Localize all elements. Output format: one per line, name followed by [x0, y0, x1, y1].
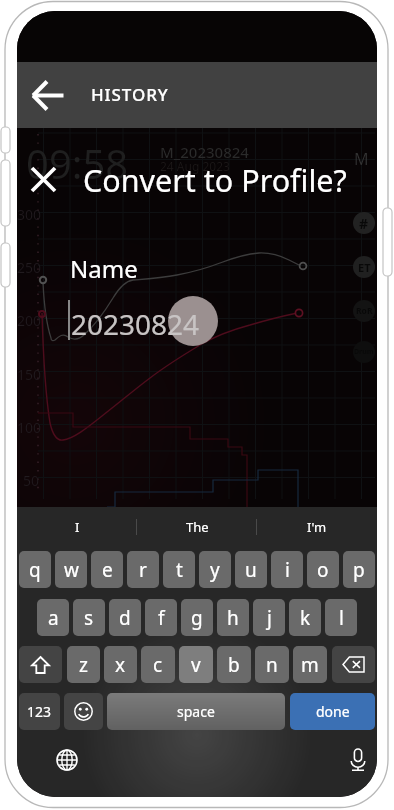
staticText: space — [177, 702, 215, 721]
button[interactable]: q — [19, 551, 51, 588]
button[interactable]: u — [235, 551, 267, 588]
staticText: p — [353, 557, 365, 583]
staticText: 20230824 — [71, 305, 200, 343]
staticText: s — [84, 605, 94, 631]
button[interactable]: I'm — [257, 507, 377, 547]
button[interactable]: i — [271, 551, 303, 588]
button[interactable]: z — [67, 646, 100, 683]
button[interactable]: done — [290, 693, 375, 730]
staticText: The — [186, 518, 209, 536]
button[interactable]: r — [127, 551, 159, 588]
staticText: l — [339, 605, 344, 631]
staticText: e — [102, 557, 113, 583]
button[interactable]: Shift — [19, 646, 62, 683]
staticText: 50 — [23, 471, 40, 490]
button[interactable]: I — [17, 507, 137, 547]
staticText: Name — [70, 252, 138, 285]
button[interactable]: ET — [353, 256, 375, 278]
staticText: 100 — [17, 418, 42, 437]
button[interactable]: g — [181, 599, 213, 636]
button[interactable]: v — [179, 646, 213, 683]
button[interactable]: l — [325, 599, 357, 636]
button[interactable]: Back — [17, 62, 79, 128]
staticText: 123 — [27, 702, 52, 721]
staticText: 300 — [17, 205, 42, 224]
staticText: u — [245, 557, 257, 583]
button[interactable]: Close — [20, 156, 66, 202]
button[interactable]: t — [163, 551, 195, 588]
button[interactable]: d — [109, 599, 141, 636]
staticText: 09:58 — [26, 136, 129, 190]
button[interactable]: b — [217, 646, 251, 683]
staticText: w — [64, 557, 79, 583]
staticText: 24 Aug 2023 — [160, 158, 230, 174]
staticText: t — [176, 557, 183, 583]
staticText: done — [316, 702, 350, 721]
staticText: a — [48, 605, 59, 631]
button[interactable]: k — [289, 599, 321, 636]
staticText: M — [354, 148, 369, 170]
button[interactable]: e — [91, 551, 123, 588]
staticText: g — [191, 605, 203, 631]
staticText: q — [29, 557, 41, 583]
staticText: j — [267, 605, 272, 631]
staticText: r — [139, 557, 147, 583]
staticText: b — [228, 652, 240, 678]
button[interactable]: p — [343, 551, 375, 588]
staticText: M_20230824 — [160, 142, 249, 162]
staticText: c — [153, 652, 163, 678]
staticText: 250 — [17, 258, 42, 277]
staticText: 150 — [17, 365, 42, 384]
staticText: m — [301, 652, 319, 678]
staticText: i — [285, 557, 290, 583]
button[interactable]: a — [37, 599, 69, 636]
staticText: z — [79, 652, 88, 678]
staticText: y — [210, 557, 220, 583]
staticText: 200 — [17, 311, 42, 330]
button[interactable]: Drum — [353, 341, 375, 363]
staticText: x — [115, 652, 126, 678]
button[interactable]: y — [199, 551, 231, 588]
button[interactable]: j — [253, 599, 285, 636]
button[interactable]: Backspace — [332, 646, 375, 683]
button[interactable]: w — [55, 551, 87, 588]
staticText: o — [317, 557, 329, 583]
button[interactable]: s — [73, 599, 105, 636]
button[interactable]: Emoji — [64, 693, 103, 730]
staticText: I — [75, 518, 80, 536]
button[interactable]: RoR — [353, 300, 375, 322]
button[interactable]: m — [293, 646, 327, 683]
button[interactable]: h — [217, 599, 249, 636]
button[interactable]: 123 — [19, 693, 60, 730]
staticText: HISTORY — [91, 83, 169, 106]
staticText: n — [266, 652, 278, 678]
button[interactable]: c — [141, 646, 175, 683]
staticText: Convert to Profile? — [83, 159, 347, 201]
button[interactable]: # — [353, 212, 375, 234]
button[interactable]: The — [137, 507, 257, 547]
staticText: k — [300, 605, 311, 631]
staticText: I'm — [307, 518, 327, 536]
button[interactable]: Voice input — [336, 738, 377, 782]
staticText: d — [119, 605, 131, 631]
staticText: f — [158, 605, 165, 631]
button[interactable]: o — [307, 551, 339, 588]
staticText: ET — [358, 260, 371, 275]
staticText: h — [227, 605, 239, 631]
button[interactable]: space — [107, 693, 285, 730]
button[interactable]: x — [104, 646, 137, 683]
button[interactable]: Change language — [45, 738, 89, 782]
staticText: RoR — [356, 305, 373, 317]
staticText: # — [359, 214, 369, 233]
button[interactable]: f — [145, 599, 177, 636]
button[interactable]: n — [255, 646, 289, 683]
staticText: v — [191, 652, 201, 678]
